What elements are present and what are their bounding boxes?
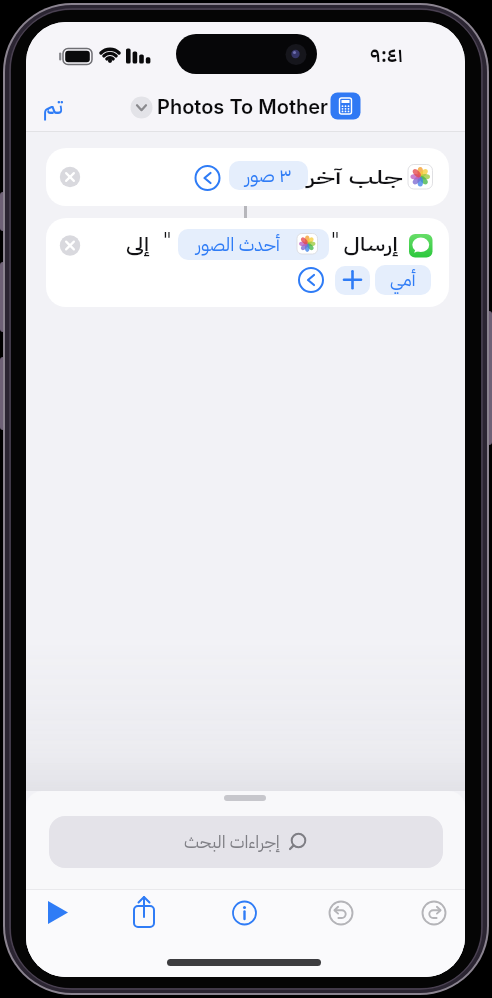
staticText: Photos To Mother xyxy=(157,95,328,119)
staticText: ٣ صور xyxy=(245,161,292,190)
button[interactable] xyxy=(178,229,329,260)
button[interactable]: ٣ صور xyxy=(229,161,308,190)
staticText: " xyxy=(163,225,172,255)
staticText: جلب آخر xyxy=(307,163,403,192)
staticText: أمي xyxy=(390,266,416,294)
button[interactable]: أمي xyxy=(375,265,431,295)
staticText: إرسال xyxy=(343,230,398,259)
staticText: " xyxy=(331,225,340,255)
staticText: تم xyxy=(43,91,63,123)
button[interactable]: إجراءات البحث xyxy=(49,816,443,868)
button[interactable] xyxy=(335,266,370,295)
staticText: إلى xyxy=(126,230,150,259)
staticText: ٩:٤١ xyxy=(370,40,403,70)
staticText: أحدث الصور xyxy=(196,231,280,259)
staticText: إجراءات البحث xyxy=(184,829,280,855)
button[interactable] xyxy=(46,148,449,206)
button[interactable] xyxy=(46,218,449,307)
